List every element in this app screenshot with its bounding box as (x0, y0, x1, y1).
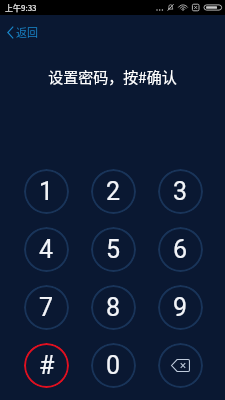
staticText: 6 (173, 235, 188, 264)
button[interactable]: 6 (158, 227, 203, 272)
staticText: 上午9:33 (5, 2, 37, 14)
button[interactable]: 2 (91, 169, 136, 214)
staticText: 2 (106, 177, 121, 206)
staticText: 8 (106, 293, 121, 322)
staticText: 返回 (16, 24, 38, 40)
staticText: 9 (173, 293, 188, 322)
button[interactable]: 1 (24, 169, 69, 214)
button[interactable]: 9 (158, 285, 203, 330)
button[interactable]: Backspace (158, 343, 203, 388)
button[interactable]: 7 (24, 285, 69, 330)
button[interactable]: 3 (158, 169, 203, 214)
button[interactable]: Back 返回 (5, 22, 40, 42)
staticText: 1 (39, 177, 54, 206)
button[interactable]: # (24, 343, 69, 388)
button[interactable]: 8 (91, 285, 136, 330)
staticText: # (39, 351, 55, 380)
button[interactable]: 5 (91, 227, 136, 272)
button[interactable]: 4 (24, 227, 69, 272)
staticText: 4 (39, 235, 54, 264)
staticText: 3 (173, 177, 188, 206)
staticText: 5 (106, 235, 121, 264)
staticText: 设置密码，按#确认 (0, 66, 225, 88)
button[interactable]: 0 (91, 343, 136, 388)
staticText: 7 (39, 293, 54, 322)
staticText: 0 (106, 351, 121, 380)
